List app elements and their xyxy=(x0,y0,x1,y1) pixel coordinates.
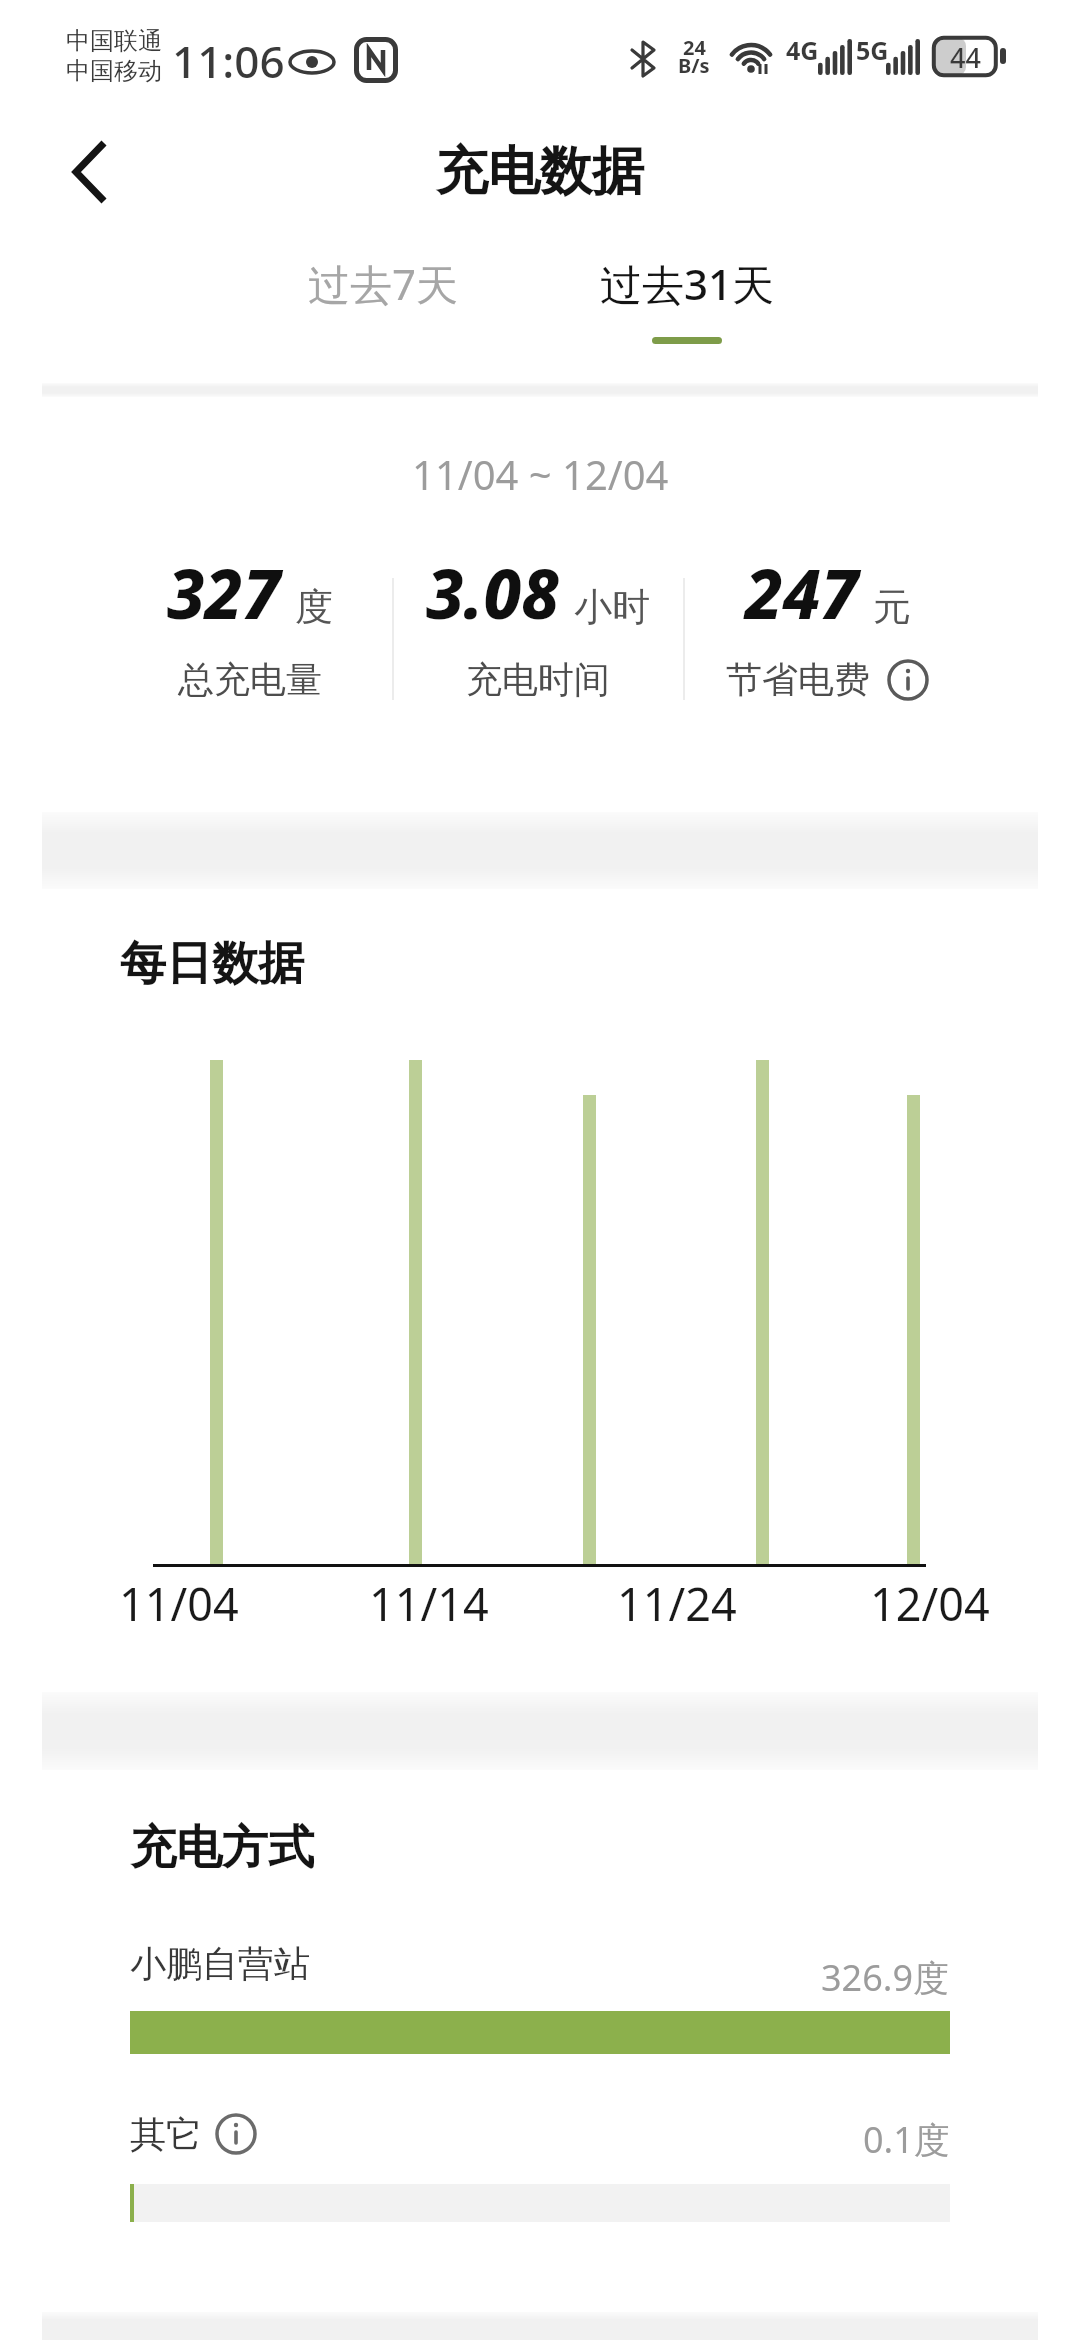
staticText: 12/04 xyxy=(870,1573,990,1634)
staticText: 中国联通 xyxy=(66,26,162,56)
staticText: 充电方式 xyxy=(130,1819,314,1877)
staticText: 节省电费 xyxy=(726,657,870,702)
button[interactable]: 过去7天 xyxy=(223,238,543,328)
staticText: 11/04 xyxy=(119,1573,239,1634)
staticText: 小时 xyxy=(574,583,650,631)
staticText: 24 xyxy=(683,34,706,61)
staticText: 过去7天 xyxy=(308,255,459,312)
button[interactable]: 过去31天 xyxy=(527,238,847,328)
staticText: B/s xyxy=(678,52,710,79)
staticText: 小鹏自营站 xyxy=(130,1941,310,1986)
staticText: 44 xyxy=(950,39,981,76)
button[interactable] xyxy=(52,130,132,214)
staticText: 327 xyxy=(167,547,281,638)
staticText: 11/04 ~ 12/04 xyxy=(412,447,669,501)
staticText: 过去31天 xyxy=(600,255,775,312)
staticText: 11/24 xyxy=(617,1573,737,1634)
staticText: 11/14 xyxy=(369,1573,489,1634)
staticText: 326.9度 xyxy=(821,1953,950,2002)
button[interactable] xyxy=(214,2112,258,2156)
button[interactable] xyxy=(886,658,930,702)
staticText: 充电时间 xyxy=(466,657,610,702)
staticText: 11:06 xyxy=(172,31,285,91)
staticText: 0.1度 xyxy=(863,2115,950,2164)
staticText: 3.08 xyxy=(426,547,560,638)
staticText: 中国移动 xyxy=(66,56,162,86)
staticText: 元 xyxy=(873,583,911,631)
staticText: 总充电量 xyxy=(178,657,322,702)
staticText: 每日数据 xyxy=(120,935,304,993)
staticText: 充电数据 xyxy=(436,139,644,205)
staticText: 5G xyxy=(856,33,889,63)
staticText: 其它 xyxy=(130,2112,202,2157)
staticText: 247 xyxy=(745,547,859,638)
staticText: 度 xyxy=(295,583,333,631)
staticText: 4G xyxy=(786,33,819,63)
